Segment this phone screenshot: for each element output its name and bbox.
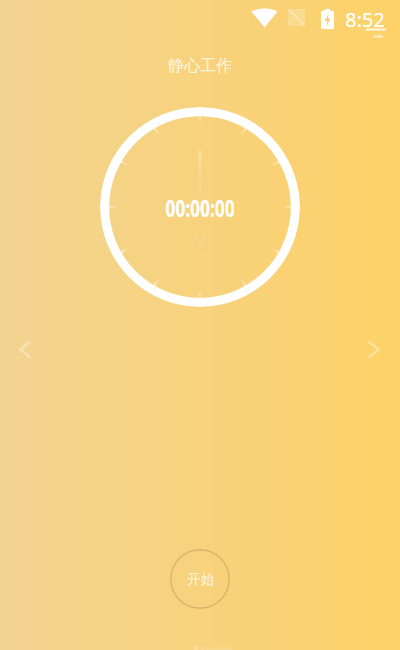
button[interactable]: More options: [186, 642, 232, 650]
button[interactable]: 开始: [170, 549, 230, 609]
button[interactable]: Next preset: [358, 333, 390, 365]
button[interactable]: Previous preset: [9, 333, 41, 365]
staticText: 静心工作: [168, 56, 232, 76]
staticText: 开始: [187, 571, 214, 588]
button[interactable]: 静心工作: [154, 50, 246, 82]
staticText: 8:52: [345, 6, 385, 33]
staticText: 00:00:00: [165, 192, 235, 223]
button[interactable]: Timer 00:00:00: [100, 107, 300, 307]
